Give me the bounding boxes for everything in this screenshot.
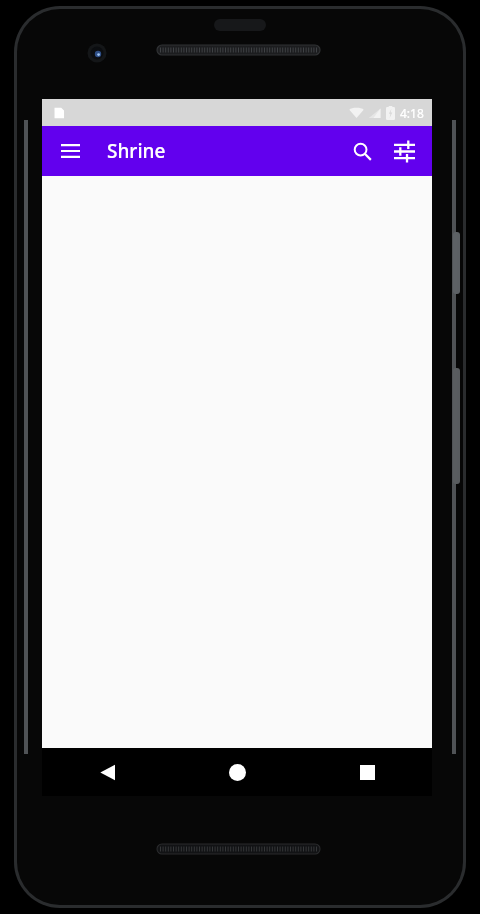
- button[interactable]: Back: [42, 748, 172, 796]
- staticText: 4:18: [400, 105, 424, 121]
- button[interactable]: Recent apps: [302, 748, 432, 796]
- button[interactable]: Open navigation menu: [52, 133, 88, 169]
- button[interactable]: Search: [342, 131, 382, 171]
- staticText: Shrine: [107, 138, 166, 164]
- button[interactable]: Home: [172, 748, 302, 796]
- button[interactable]: Filter options: [384, 131, 424, 171]
